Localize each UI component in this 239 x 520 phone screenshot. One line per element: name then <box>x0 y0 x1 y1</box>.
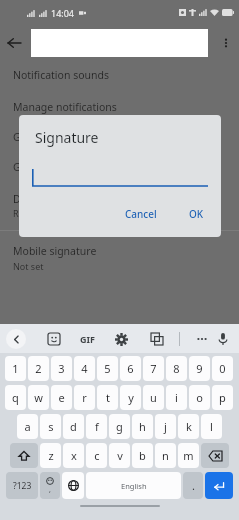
staticText: 9 <box>196 361 203 376</box>
button[interactable]: English <box>86 472 181 499</box>
button[interactable]: u <box>143 385 164 410</box>
staticText: c <box>94 448 100 463</box>
button[interactable]: Translate <box>147 329 167 349</box>
staticText: q <box>12 390 19 405</box>
button[interactable]: n <box>155 443 176 468</box>
staticText: . <box>192 478 195 493</box>
button[interactable]: c <box>86 443 107 468</box>
staticText: z <box>48 448 54 463</box>
button[interactable]: t <box>97 385 118 410</box>
button[interactable]: a <box>17 414 38 439</box>
staticText: m <box>183 448 194 463</box>
staticText: d <box>70 419 77 434</box>
staticText: OK <box>189 207 204 221</box>
button[interactable]: Cancel <box>117 203 165 225</box>
button[interactable]: g <box>109 414 130 439</box>
button[interactable]: 2 <box>28 356 49 381</box>
staticText: Mobile signature <box>13 244 97 258</box>
staticText: 1 <box>12 361 19 376</box>
button[interactable]: b <box>132 443 153 468</box>
staticText: v <box>117 448 123 463</box>
staticText: f <box>95 419 99 434</box>
button[interactable]: Shift <box>10 443 38 468</box>
staticText: 4 <box>81 361 88 376</box>
staticText: ?123 <box>13 480 32 492</box>
staticText: 14:04 <box>51 7 75 19</box>
button[interactable]: j <box>155 414 176 439</box>
button[interactable]: v <box>109 443 130 468</box>
button[interactable]: Emoji <box>40 472 60 499</box>
button[interactable]: OK <box>181 203 212 225</box>
staticText: English <box>121 481 147 491</box>
button[interactable]: Enter <box>205 472 233 499</box>
button[interactable]: f <box>86 414 107 439</box>
button[interactable]: s <box>40 414 61 439</box>
button[interactable]: . <box>183 472 203 499</box>
button[interactable]: More <box>192 329 212 349</box>
button[interactable]: h <box>132 414 153 439</box>
button[interactable]: Settings <box>111 329 131 349</box>
button[interactable]: 8 <box>166 356 187 381</box>
button[interactable]: 7 <box>143 356 164 381</box>
staticText: w <box>34 390 43 405</box>
button[interactable]: r <box>74 385 95 410</box>
button[interactable]: q <box>5 385 26 410</box>
staticText: y <box>128 390 134 405</box>
staticText: Not set <box>13 260 44 272</box>
button[interactable]: 9 <box>189 356 210 381</box>
button[interactable]: i <box>166 385 187 410</box>
staticText: Reply <box>13 207 37 219</box>
staticText: G <box>13 160 21 174</box>
staticText: 8 <box>173 361 180 376</box>
staticText: r <box>82 390 87 405</box>
staticText: u <box>150 390 157 405</box>
button[interactable]: 4 <box>74 356 95 381</box>
staticText: p <box>219 390 226 405</box>
button[interactable]: Stickers <box>44 329 64 349</box>
staticText: 3 <box>58 361 65 376</box>
button[interactable]: l <box>201 414 222 439</box>
button[interactable]: 6 <box>120 356 141 381</box>
staticText: s <box>48 419 54 434</box>
staticText: 6 <box>127 361 134 376</box>
button[interactable]: Change language <box>62 472 84 499</box>
button[interactable] <box>32 165 208 187</box>
staticText: 0 <box>219 361 226 376</box>
staticText: D <box>13 192 21 206</box>
staticText: Cancel <box>125 207 157 221</box>
button[interactable]: 3 <box>51 356 72 381</box>
button[interactable]: 0 <box>212 356 233 381</box>
button[interactable]: Back <box>6 329 26 349</box>
button[interactable]: ?123 <box>6 472 38 499</box>
button[interactable]: 5 <box>97 356 118 381</box>
staticText: GIF <box>80 333 95 345</box>
button[interactable]: 1 <box>5 356 26 381</box>
button[interactable]: GIF <box>80 333 95 345</box>
button[interactable]: e <box>51 385 72 410</box>
staticText: j <box>164 419 167 434</box>
staticText: g <box>116 419 123 434</box>
staticText: a <box>24 419 31 434</box>
button[interactable]: o <box>189 385 210 410</box>
button[interactable]: y <box>120 385 141 410</box>
button[interactable]: w <box>28 385 49 410</box>
button[interactable]: p <box>212 385 233 410</box>
button[interactable]: k <box>178 414 199 439</box>
staticText: n <box>162 448 169 463</box>
button[interactable]: Backspace <box>201 443 229 468</box>
staticText: o <box>196 390 203 405</box>
staticText: 2 <box>35 361 42 376</box>
staticText: k <box>186 419 192 434</box>
staticText: 7 <box>150 361 157 376</box>
button[interactable]: x <box>63 443 84 468</box>
button[interactable]: d <box>63 414 84 439</box>
staticText: , <box>49 485 51 495</box>
button[interactable]: m <box>178 443 199 468</box>
button[interactable]: Voice input <box>213 329 233 349</box>
button[interactable]: More options <box>213 30 239 56</box>
button[interactable]: Back <box>0 29 28 57</box>
staticText: Manage notifications <box>13 100 117 114</box>
button[interactable]: z <box>40 443 61 468</box>
staticText: t <box>106 390 110 405</box>
